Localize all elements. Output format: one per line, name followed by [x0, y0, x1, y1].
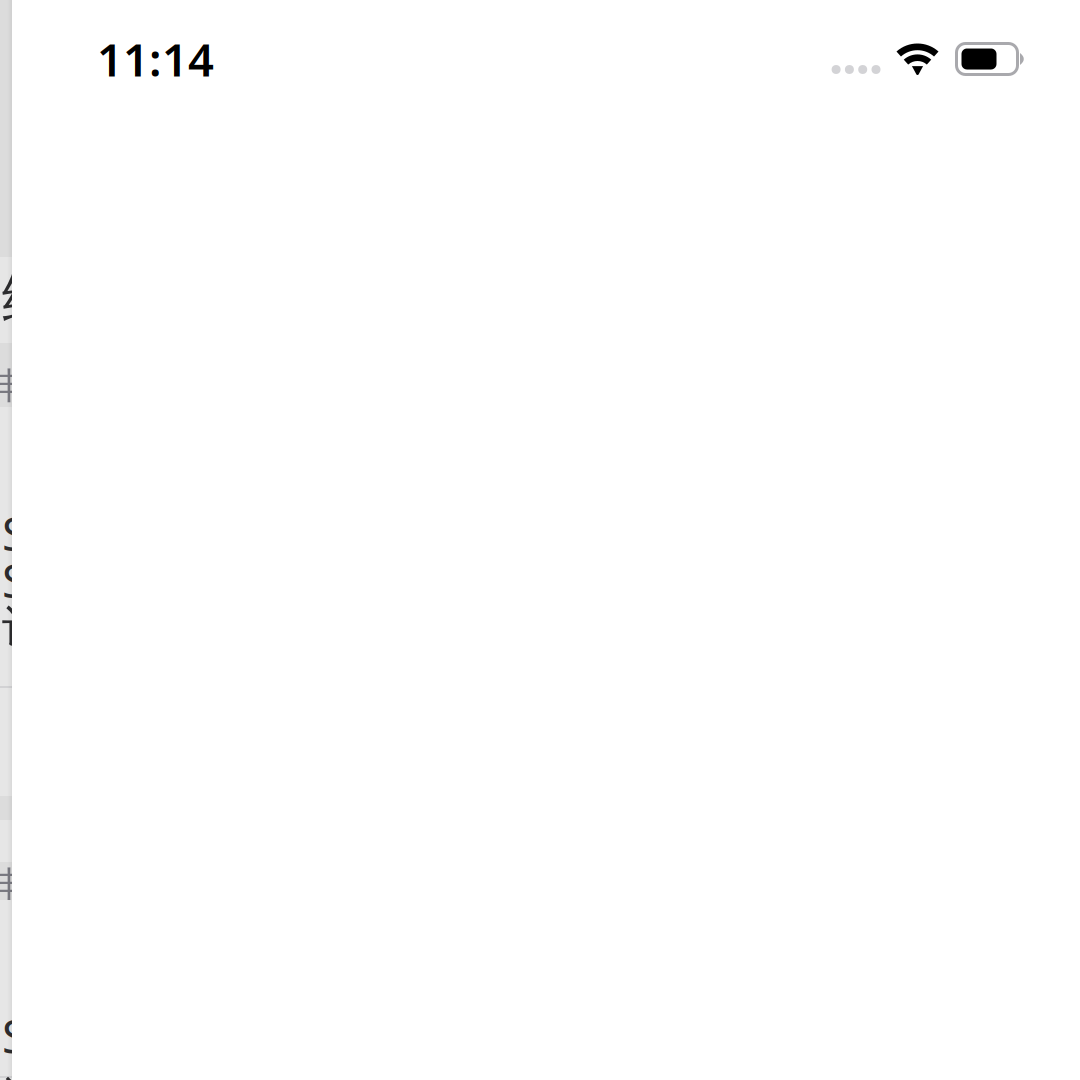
button[interactable]: 记录温湿度	[0, 604, 1080, 651]
button[interactable]: Sonoff Mini	[0, 1012, 1080, 1060]
staticText: Sonoff Mini	[2, 1006, 245, 1066]
staticText: 绑定设备	[2, 266, 226, 334]
button[interactable]: 温度计	[0, 1078, 1080, 1080]
staticText: 11:14	[97, 29, 214, 89]
staticText: Sonoff 开关	[2, 503, 242, 564]
staticText: 丰田设备	[0, 863, 136, 907]
button[interactable]: 绑定设备	[0, 257, 1080, 343]
button[interactable]: Sonoff 开关	[0, 510, 1080, 557]
staticText: 记录温湿度	[2, 600, 227, 655]
button[interactable]: Sonoff 插座	[0, 557, 1080, 604]
staticText: Sonoff 插座	[2, 550, 242, 611]
staticText: 丰收设备	[0, 364, 136, 408]
staticText: 温度计	[2, 1070, 137, 1080]
